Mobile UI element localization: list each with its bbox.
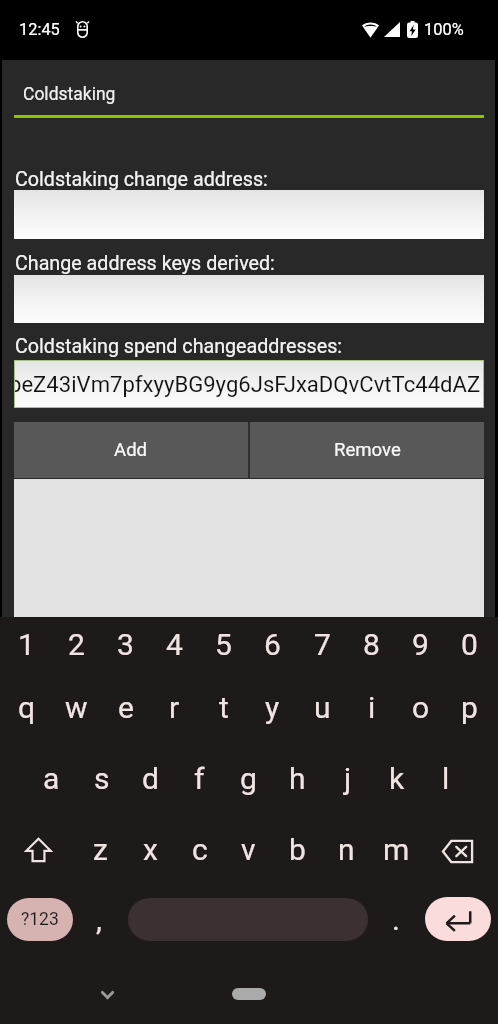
staticText: Coldstaking change address: [15,168,268,191]
staticText: g [240,761,257,796]
button[interactable]: k [372,750,421,806]
button[interactable]: 5 [199,616,248,672]
button[interactable]: t [199,679,248,735]
button[interactable]: . [371,891,420,947]
button[interactable]: n [322,821,371,877]
button[interactable]: d [126,750,175,806]
button[interactable]: c [175,821,224,877]
staticText: j [344,761,352,796]
button[interactable]: l [421,750,470,806]
staticText: o [412,690,430,725]
button[interactable]: 3 [101,616,150,672]
staticText: 0 [461,627,478,662]
staticText: Add [114,439,148,461]
button[interactable] [14,190,484,239]
staticText: v [241,832,256,867]
button[interactable]: ?123 [7,898,73,941]
staticText: n [338,832,355,867]
staticText: 3 [117,627,134,662]
button[interactable]: j [323,750,372,806]
button[interactable]: m [372,821,421,877]
button[interactable]: y [248,679,297,735]
staticText: d [142,761,159,796]
staticText: e [118,690,134,725]
button[interactable]: 2 [52,616,101,672]
staticText: ?123 [21,909,59,930]
staticText: Coldstaking [23,84,116,105]
staticText: 8 [363,627,380,662]
staticText: 1 [18,627,35,662]
button[interactable]: 1 [2,616,51,672]
button[interactable]: 9 [396,616,445,672]
button[interactable]: g [224,750,273,806]
button[interactable]: o [396,679,445,735]
button[interactable]: x [126,821,175,877]
staticText: , [96,902,102,937]
staticText: 12:45 [19,20,60,39]
staticText: a [43,761,60,796]
button[interactable]: Shift [14,822,63,878]
button[interactable]: a [27,750,76,806]
staticText: c [192,832,208,867]
staticText: s [94,761,110,796]
button[interactable]: w [52,679,101,735]
button[interactable]: Enter [425,897,491,941]
staticText: r [169,690,180,725]
staticText: z [93,832,108,867]
button[interactable]: Home [232,988,266,1000]
staticText: 100% [424,20,464,39]
button[interactable]: 8 [347,616,396,672]
button[interactable]: r [150,679,199,735]
button[interactable]: b [273,821,322,877]
button[interactable]: h [273,750,322,806]
staticText: x [143,832,158,867]
button[interactable]: , [74,891,123,947]
button[interactable]: p [445,679,494,735]
button[interactable]: s [77,750,126,806]
button[interactable]: Backspace [433,823,482,879]
staticText: f [194,761,205,796]
staticText: 4 [166,627,183,662]
button[interactable]: 0 [445,616,494,672]
staticText: t [219,690,229,725]
staticText: u [314,690,331,725]
staticText: l [442,761,450,796]
staticText: . [392,902,400,937]
button[interactable]: Remove [250,422,484,478]
staticText: Remove [334,439,401,461]
button[interactable]: v [224,821,273,877]
button[interactable]: 7 [298,616,347,672]
button[interactable]: u [298,679,347,735]
button[interactable]: Add [14,422,248,478]
staticText: w [65,690,88,725]
staticText: q [18,690,36,725]
button[interactable]: 6 [248,616,297,672]
button[interactable]: 4 [150,616,199,672]
staticText: p [461,690,478,725]
staticText: 9 [412,627,429,662]
button[interactable]: Hide keyboard [85,978,130,1012]
staticText: 2 [68,627,85,662]
staticText: beZ43iVm7pfxyyBG9yg6JsFJxaDQvCvtTc44dAZ [14,371,479,397]
button[interactable]: Space [128,898,368,941]
staticText: k [389,761,405,796]
staticText: 5 [215,627,232,662]
button[interactable]: i [347,679,396,735]
button[interactable]: beZ43iVm7pfxyyBG9yg6JsFJxaDQvCvtTc44dAZ [14,360,484,408]
staticText: y [265,690,280,725]
staticText: 6 [264,627,281,662]
staticText: Coldstaking spend changeaddresses: [15,335,343,358]
staticText: h [289,761,306,796]
staticText: i [368,690,376,725]
button[interactable]: z [76,821,125,877]
button[interactable] [14,275,484,323]
staticText: 7 [314,627,331,662]
button[interactable]: e [101,679,150,735]
button[interactable]: f [175,750,224,806]
staticText: b [289,832,306,867]
staticText: Change address keys derived: [15,252,275,275]
staticText: m [383,832,410,867]
button[interactable]: q [2,679,51,735]
